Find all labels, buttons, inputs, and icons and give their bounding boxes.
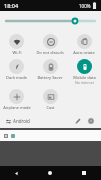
button[interactable]: Brightness <box>0 11 101 31</box>
staticText: Battery Saver <box>37 75 63 80</box>
button[interactable]: Airplane mode <box>0 87 33 112</box>
button[interactable]: Auto-rotate <box>67 32 101 57</box>
button[interactable]: Edit <box>72 115 83 126</box>
button[interactable]: Wi-Fi <box>0 32 33 57</box>
staticText: Auto-rotate <box>73 50 95 55</box>
button[interactable]: Android <box>5 117 31 125</box>
staticText: Cast <box>46 105 55 110</box>
staticText: 100% <box>79 3 91 9</box>
staticText: 18:04 <box>4 2 19 9</box>
button[interactable]: Cast <box>33 87 67 112</box>
staticText: Wi-Fi <box>12 50 22 55</box>
button[interactable]: Mobile data <box>67 57 101 87</box>
button[interactable] <box>0 130 101 141</box>
button[interactable]: Settings <box>85 115 96 126</box>
button[interactable]: Do not disturb <box>33 32 67 57</box>
button[interactable]: Back <box>0 166 33 180</box>
staticText: Mobile data <box>73 75 96 80</box>
button[interactable]: Home <box>33 166 67 180</box>
staticText: Dark mode <box>6 75 27 80</box>
staticText: No internet <box>75 80 94 85</box>
button[interactable]: Dark mode <box>0 57 33 82</box>
button[interactable]: Battery Saver <box>33 57 67 82</box>
staticText: Android <box>13 118 30 124</box>
staticText: Do not disturb <box>36 50 64 55</box>
staticText: Airplane mode <box>3 105 31 110</box>
button[interactable]: Recents <box>67 166 101 180</box>
